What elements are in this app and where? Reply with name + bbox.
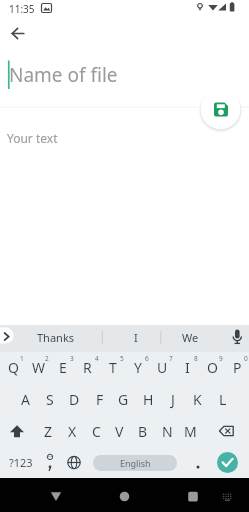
staticText: 4 bbox=[95, 354, 99, 363]
button[interactable]: Z bbox=[36, 416, 60, 447]
button[interactable]: U bbox=[150, 352, 175, 382]
staticText: T bbox=[109, 358, 117, 377]
button[interactable]: P bbox=[225, 352, 249, 382]
staticText: R bbox=[83, 358, 92, 377]
button[interactable]: B bbox=[131, 416, 155, 447]
button[interactable]: K bbox=[185, 384, 210, 415]
staticText: Your text bbox=[7, 130, 58, 146]
button[interactable] bbox=[226, 326, 248, 348]
staticText: Y bbox=[134, 358, 142, 377]
staticText: N bbox=[162, 422, 173, 441]
staticText: J bbox=[171, 390, 175, 409]
staticText: Q bbox=[8, 358, 19, 377]
staticText: 7 bbox=[169, 354, 173, 363]
button[interactable] bbox=[109, 482, 141, 508]
button[interactable]: We bbox=[166, 326, 214, 348]
button[interactable]: Thanks bbox=[18, 326, 94, 348]
staticText: M bbox=[184, 422, 197, 441]
button[interactable]: X bbox=[60, 416, 84, 447]
button[interactable]: J bbox=[160, 384, 185, 415]
button[interactable]: V bbox=[107, 416, 131, 447]
button[interactable]: Your text bbox=[7, 130, 107, 146]
staticText: S bbox=[46, 390, 54, 409]
button[interactable] bbox=[38, 447, 62, 478]
button[interactable]: English bbox=[93, 455, 177, 471]
button[interactable]: W bbox=[26, 352, 51, 382]
button[interactable]: F bbox=[87, 384, 112, 415]
staticText: Thanks bbox=[37, 330, 75, 345]
button[interactable]: I bbox=[175, 352, 200, 382]
staticText: 9 bbox=[219, 354, 223, 363]
button[interactable] bbox=[200, 89, 241, 130]
button[interactable]: A bbox=[13, 384, 38, 415]
staticText: 6 bbox=[145, 354, 149, 363]
staticText: E bbox=[59, 358, 67, 377]
staticText: D bbox=[69, 390, 80, 409]
button[interactable] bbox=[62, 447, 86, 478]
staticText: 3 bbox=[70, 354, 74, 363]
button[interactable] bbox=[6, 22, 29, 45]
staticText: We bbox=[182, 330, 199, 345]
staticText: 5 bbox=[120, 354, 124, 363]
button[interactable] bbox=[40, 482, 72, 508]
staticText: G bbox=[118, 390, 129, 409]
button[interactable] bbox=[217, 452, 238, 473]
button[interactable]: I bbox=[112, 326, 160, 348]
staticText: W bbox=[32, 358, 46, 377]
staticText: 2 bbox=[45, 354, 49, 363]
staticText: V bbox=[115, 422, 124, 441]
staticText: A bbox=[21, 390, 30, 409]
button[interactable]: D bbox=[62, 384, 87, 415]
staticText: 1 bbox=[20, 354, 24, 363]
staticText: 11:35 bbox=[9, 2, 35, 14]
staticText: U bbox=[157, 358, 168, 377]
button[interactable]: L bbox=[210, 384, 235, 415]
staticText: F bbox=[96, 390, 104, 409]
button[interactable]: ?123 bbox=[4, 447, 38, 478]
staticText: Z bbox=[44, 422, 53, 441]
staticText: B bbox=[138, 422, 148, 441]
button[interactable]: E bbox=[50, 352, 75, 382]
staticText: I bbox=[185, 358, 190, 377]
button[interactable]: Y bbox=[125, 352, 150, 382]
button[interactable]: N bbox=[155, 416, 179, 447]
button[interactable]: M bbox=[178, 416, 202, 447]
staticText: I bbox=[134, 330, 138, 345]
button[interactable]: O bbox=[200, 352, 225, 382]
button[interactable] bbox=[186, 447, 210, 478]
button[interactable]: C bbox=[84, 416, 108, 447]
button[interactable]: G bbox=[111, 384, 136, 415]
staticText: P bbox=[233, 358, 242, 377]
staticText: L bbox=[219, 390, 227, 409]
staticText: 0 bbox=[244, 354, 248, 363]
button[interactable]: Name of file bbox=[9, 61, 159, 89]
button[interactable] bbox=[177, 482, 209, 508]
staticText: Name of file bbox=[9, 62, 118, 88]
button[interactable]: Q bbox=[1, 352, 26, 382]
staticText: English bbox=[120, 457, 151, 469]
button[interactable]: T bbox=[100, 352, 125, 382]
staticText: C bbox=[92, 422, 101, 441]
button[interactable]: H bbox=[136, 384, 161, 415]
button[interactable] bbox=[2, 416, 32, 446]
button[interactable]: R bbox=[75, 352, 100, 382]
staticText: H bbox=[143, 390, 154, 409]
staticText: K bbox=[193, 390, 202, 409]
staticText: X bbox=[68, 422, 77, 441]
staticText: ?123 bbox=[9, 455, 33, 470]
staticText: 8 bbox=[194, 354, 198, 363]
staticText: O bbox=[207, 358, 218, 377]
button[interactable]: S bbox=[37, 384, 62, 415]
button[interactable] bbox=[212, 416, 242, 446]
